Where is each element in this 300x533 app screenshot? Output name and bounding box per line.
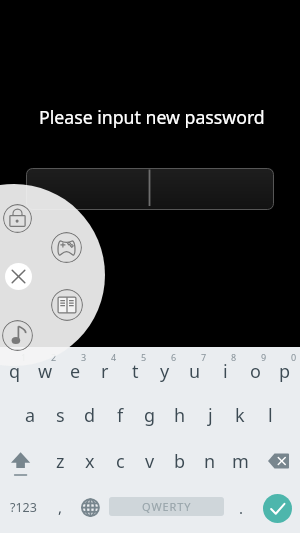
- staticText: o: [250, 359, 261, 384]
- staticText: u: [189, 359, 201, 384]
- staticText: d: [84, 403, 96, 428]
- staticText: n: [204, 449, 216, 474]
- button[interactable]: Done: [263, 494, 292, 523]
- button[interactable]: t: [120, 348, 150, 395]
- staticText: 6: [171, 351, 177, 363]
- button[interactable]: p: [270, 348, 300, 395]
- staticText: f: [117, 403, 124, 428]
- staticText: 3: [81, 351, 87, 363]
- button[interactable]: Close menu: [5, 263, 32, 290]
- staticText: b: [174, 449, 186, 474]
- button[interactable]: ,: [46, 483, 74, 531]
- staticText: ,: [58, 497, 63, 517]
- staticText: i: [223, 359, 228, 384]
- staticText: s: [56, 403, 65, 428]
- button[interactable]: q: [0, 348, 30, 395]
- staticText: x: [85, 449, 95, 474]
- button[interactable]: n: [195, 439, 225, 484]
- staticText: h: [174, 403, 186, 428]
- staticText: y: [160, 359, 170, 384]
- staticText: 9: [261, 351, 267, 363]
- button[interactable]: Books: [51, 289, 83, 321]
- button[interactable]: Lock: [3, 204, 32, 233]
- button[interactable]: z: [45, 439, 75, 484]
- button[interactable]: Music: [2, 320, 33, 351]
- staticText: q: [9, 359, 21, 384]
- staticText: 4: [111, 351, 117, 363]
- button[interactable]: b: [165, 439, 195, 484]
- staticText: p: [279, 359, 291, 384]
- staticText: g: [144, 403, 156, 428]
- button[interactable]: j: [195, 393, 225, 438]
- staticText: 5: [141, 351, 147, 363]
- button[interactable]: e: [60, 348, 90, 395]
- button[interactable]: h: [165, 393, 195, 438]
- staticText: Please input new password: [39, 105, 265, 129]
- button[interactable]: i: [210, 348, 240, 395]
- staticText: m: [232, 449, 249, 474]
- button[interactable]: Backspace: [255, 439, 300, 484]
- staticText: k: [235, 403, 245, 428]
- staticText: e: [70, 359, 81, 384]
- staticText: QWERTY: [142, 499, 192, 514]
- staticText: w: [38, 359, 53, 384]
- button[interactable]: r: [90, 348, 120, 395]
- button[interactable]: u: [180, 348, 210, 395]
- button[interactable]: QWERTY: [109, 497, 224, 516]
- button[interactable]: y: [150, 348, 180, 395]
- button[interactable]: f: [105, 393, 135, 438]
- button[interactable]: d: [75, 393, 105, 438]
- staticText: r: [101, 359, 109, 384]
- button[interactable]: w: [30, 348, 60, 395]
- staticText: 0: [291, 351, 297, 363]
- button[interactable]: x: [75, 439, 105, 484]
- button[interactable]: m: [225, 439, 255, 484]
- button[interactable]: Change language: [76, 485, 105, 533]
- staticText: 8: [231, 351, 237, 363]
- staticText: a: [25, 403, 36, 428]
- button[interactable]: l: [255, 393, 285, 438]
- staticText: ?123: [10, 499, 37, 516]
- staticText: j: [208, 403, 213, 428]
- staticText: t: [132, 359, 139, 384]
- staticText: 7: [201, 351, 207, 363]
- button[interactable]: g: [135, 393, 165, 438]
- button[interactable]: v: [135, 439, 165, 484]
- staticText: .: [239, 498, 244, 518]
- button[interactable]: ?123: [0, 483, 46, 531]
- button[interactable]: a: [15, 393, 45, 438]
- button[interactable]: o: [240, 348, 270, 395]
- staticText: v: [145, 449, 155, 474]
- button[interactable]: Games: [51, 232, 82, 263]
- staticText: 2: [51, 351, 57, 363]
- button[interactable]: k: [225, 393, 255, 438]
- button[interactable]: .: [228, 484, 254, 532]
- button[interactable]: [26, 168, 274, 210]
- staticText: z: [56, 449, 65, 474]
- button[interactable]: Shift: [0, 439, 45, 484]
- button[interactable]: c: [105, 439, 135, 484]
- staticText: l: [268, 403, 273, 428]
- staticText: c: [116, 449, 125, 474]
- button[interactable]: s: [45, 393, 75, 438]
